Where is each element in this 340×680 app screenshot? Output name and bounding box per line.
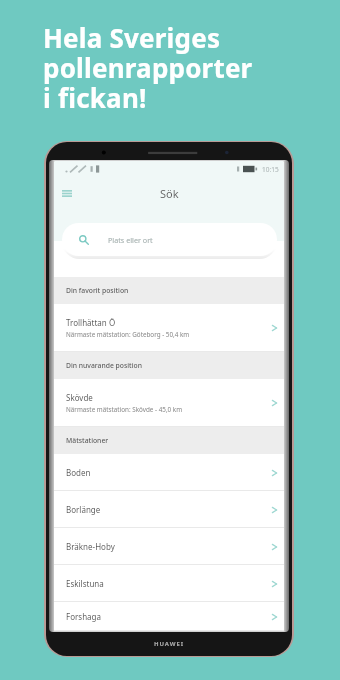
staticText: Din nuvarande position bbox=[66, 361, 142, 370]
button[interactable]: Borlänge bbox=[54, 491, 284, 528]
staticText: Närmaste mätstation: Göteborg - 50,4 km bbox=[66, 330, 190, 339]
button[interactable]: Bräkne-Hoby bbox=[54, 528, 284, 565]
staticText: Mätstationer bbox=[66, 436, 109, 445]
staticText: Hela Sveriges pollenrapporter i fickan! bbox=[43, 20, 253, 115]
button[interactable]: Open navigation menu bbox=[58, 185, 76, 201]
staticText: 10:15 bbox=[262, 165, 279, 174]
button[interactable]: Eskilstuna bbox=[54, 565, 284, 602]
staticText: Trollhättan Ö bbox=[66, 317, 116, 328]
staticText: Eskilstuna bbox=[66, 578, 104, 589]
staticText: Bräkne-Hoby bbox=[66, 541, 115, 552]
staticText: Din favorit position bbox=[66, 286, 129, 295]
staticText: Närmaste mätstation: Skövde - 45,0 km bbox=[66, 405, 183, 414]
button[interactable]: Trollhättan Ö bbox=[54, 304, 284, 352]
staticText: Forshaga bbox=[66, 611, 101, 622]
staticText: Boden bbox=[66, 467, 91, 478]
button[interactable]: Forshaga bbox=[54, 602, 284, 631]
staticText: Skövde bbox=[66, 392, 93, 403]
button[interactable]: Skövde bbox=[54, 379, 284, 427]
button[interactable]: Boden bbox=[54, 454, 284, 491]
button[interactable]: Plats eller ort bbox=[62, 223, 277, 256]
staticText: Sök bbox=[160, 186, 179, 201]
staticText: Plats eller ort bbox=[108, 235, 153, 245]
staticText: HUAWEI bbox=[154, 640, 184, 648]
staticText: Borlänge bbox=[66, 504, 101, 515]
